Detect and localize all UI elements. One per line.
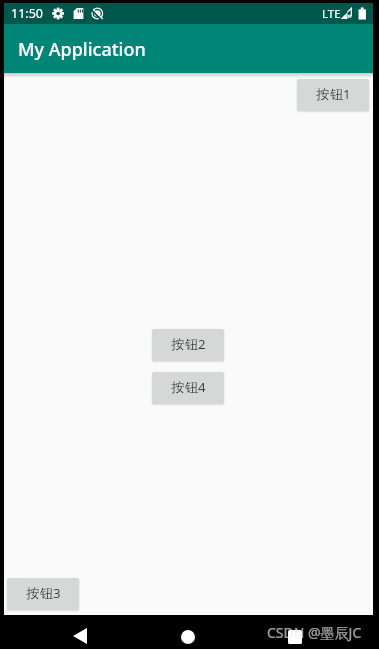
button[interactable]: 按钮2 — [152, 329, 224, 361]
staticText: 按钮2 — [171, 335, 206, 353]
button[interactable]: 按钮4 — [152, 372, 224, 404]
button[interactable]: 按钮1 — [297, 79, 369, 111]
staticText: 按钮1 — [316, 85, 351, 103]
button[interactable]: Recent apps — [277, 620, 313, 649]
staticText: CSDN @墨辰JC — [267, 623, 362, 642]
staticText: LTE — [322, 6, 341, 22]
staticText: 11:50 — [11, 5, 43, 22]
button[interactable]: Home — [170, 620, 206, 649]
staticText: My Application — [18, 37, 146, 62]
button[interactable]: 按钮3 — [7, 578, 79, 610]
staticText: 按钮4 — [171, 378, 206, 396]
button[interactable]: Back — [62, 619, 98, 649]
staticText: 按钮3 — [26, 584, 61, 602]
